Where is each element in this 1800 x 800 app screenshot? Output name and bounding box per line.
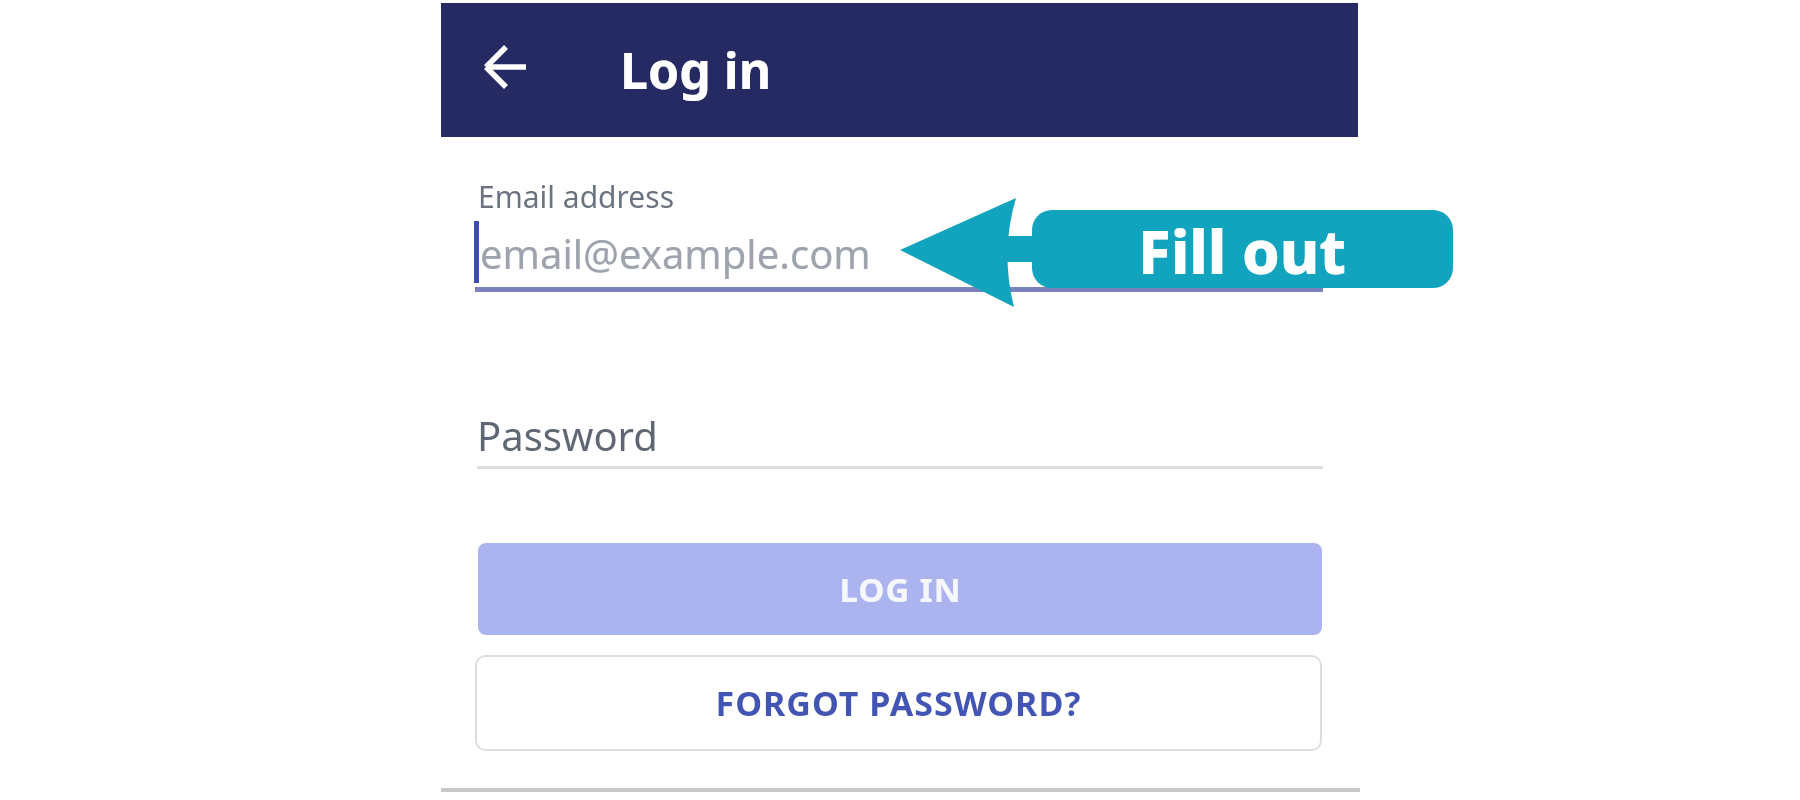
- staticText: Email address: [478, 176, 675, 217]
- button[interactable]: Password: [477, 408, 658, 462]
- button[interactable]: FORGOT PASSWORD?: [475, 655, 1322, 751]
- staticText: Fill out: [1138, 210, 1347, 288]
- staticText: Log in: [620, 36, 772, 104]
- button[interactable]: email@example.com: [480, 226, 871, 280]
- button[interactable]: LOG IN: [478, 543, 1322, 635]
- staticText: LOG IN: [839, 567, 962, 612]
- staticText: FORGOT PASSWORD?: [715, 680, 1082, 726]
- button[interactable]: [476, 37, 536, 97]
